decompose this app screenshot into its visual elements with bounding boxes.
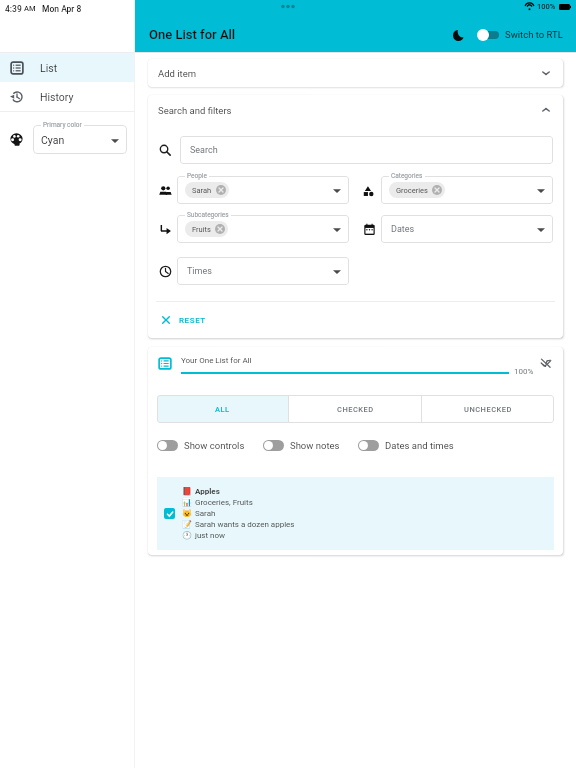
button[interactable]: Dates and times bbox=[358, 440, 454, 451]
staticText: Dates and times bbox=[385, 440, 454, 451]
button[interactable]: Sarah bbox=[177, 176, 349, 204]
staticText: Sarah bbox=[195, 509, 216, 518]
staticText: 100% bbox=[537, 2, 556, 11]
staticText: Show controls bbox=[184, 440, 245, 451]
button[interactable]: Groceries bbox=[381, 176, 553, 204]
staticText: Mon Apr 8 bbox=[42, 4, 82, 14]
button[interactable]: List bbox=[0, 53, 135, 82]
staticText: Subcategories bbox=[187, 211, 229, 219]
staticText: just now bbox=[195, 531, 226, 540]
button[interactable] bbox=[477, 28, 499, 42]
button[interactable]: Fruits bbox=[177, 215, 349, 243]
staticText: Sarah wants a dozen apples bbox=[195, 520, 295, 529]
staticText: Groceries bbox=[396, 186, 428, 195]
staticText: Search and filters bbox=[158, 105, 232, 116]
button[interactable]: Dates bbox=[381, 215, 553, 243]
button[interactable]: 📕 bbox=[157, 477, 554, 550]
button[interactable]: Search bbox=[180, 136, 553, 164]
staticText: 🕐 bbox=[182, 531, 192, 540]
staticText: Dates bbox=[391, 224, 415, 235]
button[interactable]: ALL bbox=[157, 395, 288, 423]
staticText: Sarah bbox=[192, 186, 212, 195]
staticText: Categories bbox=[391, 172, 423, 180]
staticText: Your One List for All bbox=[181, 356, 252, 365]
staticText: Primary color bbox=[43, 121, 82, 129]
staticText: 📝 bbox=[182, 520, 192, 529]
button[interactable]: CHECKED bbox=[289, 395, 421, 423]
staticText: AM bbox=[24, 4, 36, 13]
staticText: People bbox=[187, 172, 207, 180]
button[interactable]: Toggle dark mode bbox=[448, 25, 468, 45]
staticText: 😺 bbox=[182, 509, 192, 518]
staticText: RESET bbox=[179, 316, 206, 325]
staticText: Cyan bbox=[41, 134, 65, 146]
staticText: History bbox=[40, 91, 74, 103]
button[interactable]: Search and filters bbox=[148, 95, 563, 125]
staticText: Show notes bbox=[290, 440, 340, 451]
button[interactable]: Cyan bbox=[33, 125, 127, 154]
staticText: Fruits bbox=[192, 225, 211, 234]
button[interactable]: Show controls bbox=[157, 440, 245, 451]
staticText: One List for All bbox=[149, 27, 236, 42]
staticText: 4:39 bbox=[5, 4, 22, 14]
staticText: Switch to RTL bbox=[505, 29, 563, 40]
staticText: UNCHECKED bbox=[464, 405, 512, 414]
staticText: 100% bbox=[514, 367, 534, 376]
button[interactable]: Add item bbox=[148, 59, 563, 87]
button[interactable]: UNCHECKED bbox=[422, 395, 554, 423]
button[interactable]: Times bbox=[177, 257, 349, 285]
staticText: Times bbox=[187, 266, 212, 277]
button[interactable]: Show notes bbox=[263, 440, 340, 451]
button[interactable]: RESET bbox=[160, 302, 206, 338]
staticText: 📊 bbox=[182, 498, 192, 507]
staticText: List bbox=[40, 62, 58, 74]
staticText: 📕 bbox=[182, 487, 192, 496]
staticText: CHECKED bbox=[337, 405, 374, 414]
staticText: Add item bbox=[158, 68, 197, 79]
button[interactable]: History bbox=[0, 82, 135, 111]
staticText: Apples bbox=[195, 487, 220, 496]
staticText: Search bbox=[190, 145, 218, 156]
button[interactable]: Collapse all bbox=[539, 356, 553, 370]
staticText: Groceries, Fruits bbox=[195, 498, 253, 507]
staticText: ALL bbox=[215, 405, 230, 414]
